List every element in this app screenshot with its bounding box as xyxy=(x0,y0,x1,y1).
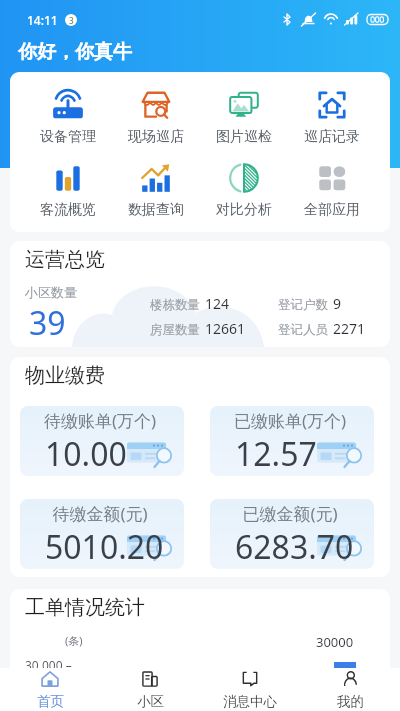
staticText: 首页 xyxy=(37,693,64,710)
staticText: 登记人员 xyxy=(278,322,328,338)
button[interactable]: 巡店记录 xyxy=(288,88,376,146)
button[interactable]: 对比分析 xyxy=(200,161,288,219)
staticText: 设备管理 xyxy=(40,128,96,146)
staticText: 9 xyxy=(333,294,342,313)
button[interactable]: 待缴金额(元) xyxy=(20,499,184,569)
staticText: 我的 xyxy=(337,693,364,710)
staticText: 5010.20 xyxy=(45,525,164,569)
staticText: 124 xyxy=(205,294,230,313)
button[interactable]: 现场巡店 xyxy=(112,88,200,146)
staticText: 10.00 xyxy=(45,432,127,476)
staticText: 图片巡检 xyxy=(216,128,272,146)
staticText: 小区 xyxy=(137,693,164,710)
staticText: 39 xyxy=(29,301,66,345)
staticText: 物业缴费 xyxy=(25,363,105,388)
staticText: 待缴账单(万个) xyxy=(20,409,180,432)
button[interactable]: 首页 xyxy=(0,668,100,711)
staticText: 对比分析 xyxy=(216,201,272,219)
staticText: 2271 xyxy=(333,319,366,338)
staticText: 登记户数 xyxy=(278,297,328,313)
button[interactable]: 图片巡检 xyxy=(200,88,288,146)
button[interactable]: 客流概览 xyxy=(24,161,112,219)
staticText: 30000 xyxy=(316,633,354,651)
staticText: 你好，你真牛 xyxy=(18,40,132,64)
staticText: 已缴账单(万个) xyxy=(210,409,370,432)
staticText: 消息中心 xyxy=(223,693,277,710)
staticText: 现场巡店 xyxy=(128,128,184,146)
button[interactable]: 设备管理 xyxy=(24,88,112,146)
button[interactable]: 数据查询 xyxy=(112,161,200,219)
staticText: 6283.70 xyxy=(235,525,354,569)
staticText: (条) xyxy=(65,633,83,648)
staticText: 楼栋数量 xyxy=(150,297,200,313)
button[interactable]: 我的 xyxy=(300,668,400,711)
button[interactable]: 消息中心 xyxy=(200,668,300,711)
staticText: 小区数量 xyxy=(25,284,77,300)
button[interactable]: 已缴金额(元) xyxy=(210,499,374,569)
staticText: 客流概览 xyxy=(40,201,96,219)
button[interactable]: 小区 xyxy=(100,668,200,711)
staticText: 运营总览 xyxy=(25,247,105,272)
staticText: 已缴金额(元) xyxy=(210,502,370,525)
staticText: 14:11 xyxy=(27,12,58,28)
button[interactable]: 全部应用 xyxy=(288,161,376,219)
staticText: 房屋数量 xyxy=(150,322,200,338)
staticText: 3 xyxy=(69,15,74,26)
staticText: 数据查询 xyxy=(128,201,184,219)
staticText: 待缴金额(元) xyxy=(20,502,180,525)
staticText: 12661 xyxy=(205,319,246,338)
staticText: 12.57 xyxy=(235,432,317,476)
staticText: 工单情况统计 xyxy=(25,595,145,620)
staticText: 巡店记录 xyxy=(304,128,360,146)
button[interactable]: 已缴账单(万个) xyxy=(210,406,374,476)
staticText: 30,000 – xyxy=(25,657,72,673)
button[interactable]: 待缴账单(万个) xyxy=(20,406,184,476)
staticText: 全部应用 xyxy=(304,201,360,219)
